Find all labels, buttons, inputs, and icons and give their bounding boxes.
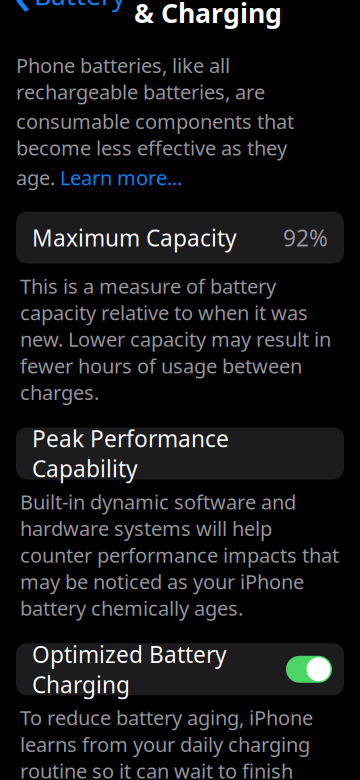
staticText: consumable components that become less e…: [16, 108, 294, 161]
staticText: Learn more...: [60, 164, 182, 191]
button[interactable]: Peak Performance Capability: [16, 427, 344, 479]
button[interactable]: Learn more...: [60, 164, 182, 191]
staticText: age.: [16, 164, 60, 191]
staticText: Maximum Capacity: [32, 223, 237, 253]
staticText: To reduce battery aging, iPhone learns f…: [20, 704, 327, 780]
staticText: ‹: [14, 0, 31, 29]
button[interactable]: ‹: [8, 0, 126, 19]
button[interactable]: Maximum Capacity: [16, 212, 344, 264]
staticText: 92%: [283, 223, 328, 253]
staticText: This is a measure of battery capacity re…: [20, 273, 331, 405]
staticText: Built-in dynamic software and hardware s…: [20, 488, 339, 621]
staticText: Battery: [34, 0, 126, 13]
staticText: Peak Performance Capability: [32, 423, 229, 484]
button[interactable]: Optimized Battery Charging: [16, 643, 344, 695]
staticText: Phone batteries, like all rechargeable b…: [16, 52, 265, 105]
staticText: Optimized Battery Charging: [32, 639, 227, 699]
staticText: Battery Health & Charging: [134, 0, 331, 30]
